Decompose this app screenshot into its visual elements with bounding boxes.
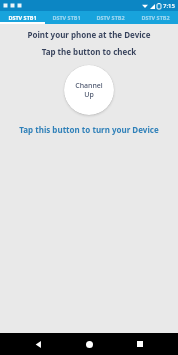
button[interactable]: DSTV STB2 [133, 11, 178, 24]
staticText: 7:15 [163, 2, 175, 10]
staticText: Point your phone at the Device [0, 29, 178, 40]
staticText: Tap the button to check [0, 46, 178, 57]
staticText: DSTV STB1 [8, 14, 37, 21]
button[interactable]: Back [25, 333, 51, 355]
staticText: DSTV STB2 [96, 14, 125, 21]
button[interactable]: Home [76, 333, 102, 355]
button[interactable]: Channel Up [64, 65, 114, 115]
button[interactable]: DSTV STB1 [0, 11, 44, 24]
button[interactable]: DSTV STB1 [44, 11, 88, 24]
staticText: Tap this button to turn your Device [0, 124, 178, 135]
staticText: Channel Up [75, 81, 103, 99]
button[interactable]: Recent apps [127, 333, 153, 355]
staticText: DSTV STB2 [141, 14, 170, 21]
staticText: DSTV STB1 [52, 14, 81, 21]
button[interactable]: DSTV STB2 [88, 11, 133, 24]
